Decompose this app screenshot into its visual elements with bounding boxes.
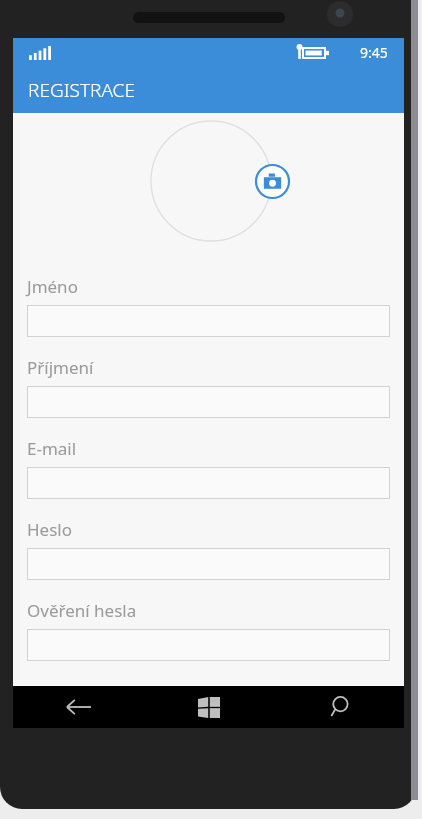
button[interactable]: Příjmení (27, 356, 390, 437)
button[interactable]: Heslo (27, 518, 390, 599)
button[interactable]: Jméno (27, 275, 390, 356)
staticText: Jméno (27, 275, 78, 298)
staticText: 9:45 (360, 43, 388, 62)
staticText: Ověření hesla (27, 599, 137, 622)
button[interactable]: Start (144, 686, 274, 728)
staticText: REGISTRACE (28, 77, 135, 103)
button[interactable]: E-mail (27, 437, 390, 518)
button[interactable]: Ověření hesla (27, 599, 390, 680)
button[interactable]: Profile photo (150, 120, 272, 242)
staticText: Heslo (27, 518, 72, 541)
staticText: E-mail (27, 437, 77, 460)
staticText: Příjmení (27, 356, 94, 379)
button[interactable]: Search (274, 686, 404, 728)
button[interactable]: Take photo (254, 163, 291, 200)
button[interactable]: Back (13, 686, 144, 728)
